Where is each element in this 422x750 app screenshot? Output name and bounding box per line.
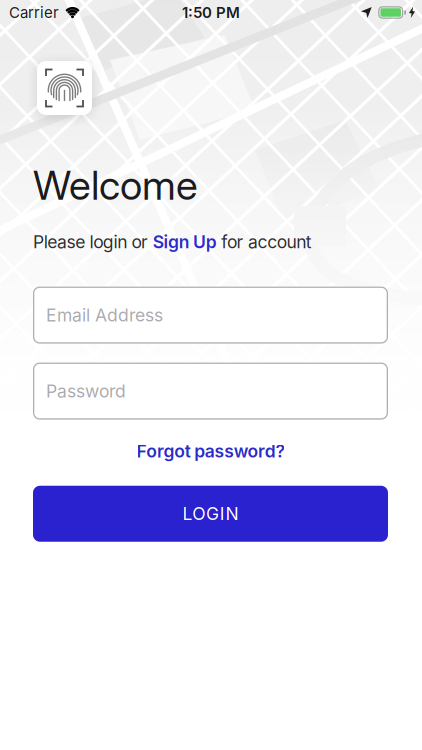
staticText: Carrier (9, 3, 59, 21)
staticText: Password (46, 380, 126, 402)
staticText: Please login or (33, 231, 153, 253)
button[interactable]: LOGIN (33, 486, 388, 542)
button[interactable]: Forgot password? (137, 441, 285, 462)
button[interactable]: Sign Up (153, 231, 217, 253)
staticText: Welcome (33, 161, 198, 209)
button[interactable]: Email Address (33, 287, 388, 344)
staticText: LOGIN (182, 503, 239, 524)
button[interactable]: Password (33, 363, 388, 420)
staticText: Sign Up (153, 231, 217, 253)
staticText: for account (217, 231, 312, 253)
staticText: Email Address (46, 304, 163, 326)
staticText: 1:50 PM (182, 3, 240, 21)
staticText: Forgot password? (137, 441, 285, 462)
button[interactable] (37, 61, 92, 115)
